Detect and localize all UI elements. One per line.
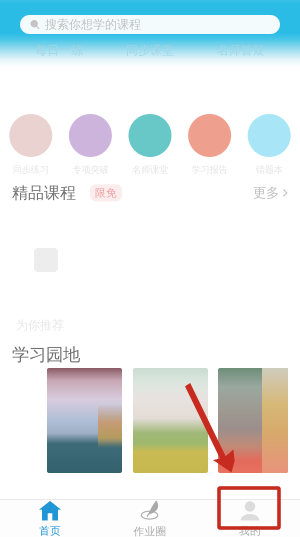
button[interactable]: 专项突破 bbox=[61, 114, 120, 175]
button[interactable]: 错题本 bbox=[239, 114, 299, 175]
button[interactable] bbox=[47, 368, 122, 473]
staticText: 专项突破 bbox=[72, 164, 108, 175]
button[interactable]: 同步课堂 bbox=[105, 43, 195, 58]
staticText: 首页 bbox=[39, 524, 61, 537]
staticText: 搜索你想学的课程 bbox=[45, 17, 141, 32]
staticText: 作业圈 bbox=[133, 525, 166, 537]
staticText: 错题本 bbox=[256, 164, 283, 175]
staticText: 我的 bbox=[239, 524, 261, 537]
button[interactable]: 名师课堂 bbox=[120, 114, 180, 175]
button[interactable]: 每日一练 bbox=[14, 43, 105, 58]
staticText: 为你推荐 bbox=[16, 318, 64, 333]
staticText: 更多 bbox=[253, 185, 279, 201]
staticText: 同步课堂 bbox=[126, 43, 174, 58]
staticText: 名师答疑 bbox=[217, 43, 265, 58]
staticText: 名师课堂 bbox=[132, 164, 168, 175]
button[interactable]: 学习报告 bbox=[180, 114, 239, 175]
staticText: 精品课程 bbox=[12, 183, 76, 203]
button[interactable] bbox=[218, 368, 288, 473]
button[interactable] bbox=[133, 368, 208, 473]
button[interactable]: 首页 bbox=[0, 500, 100, 537]
button[interactable]: 搜索你想学的课程 bbox=[20, 15, 280, 34]
staticText: 学习园地 bbox=[12, 344, 80, 365]
button[interactable]: 我的 bbox=[200, 500, 300, 537]
button[interactable]: 同步练习 bbox=[1, 114, 61, 175]
button[interactable]: 作业圈 bbox=[100, 500, 200, 537]
button[interactable]: 名师答疑 bbox=[195, 43, 286, 58]
staticText: 同步练习 bbox=[13, 164, 49, 175]
staticText: 每日一练 bbox=[35, 43, 83, 58]
staticText: 限免 bbox=[95, 186, 117, 199]
staticText: 学习报告 bbox=[192, 164, 228, 175]
button[interactable]: 更多 bbox=[253, 185, 288, 201]
